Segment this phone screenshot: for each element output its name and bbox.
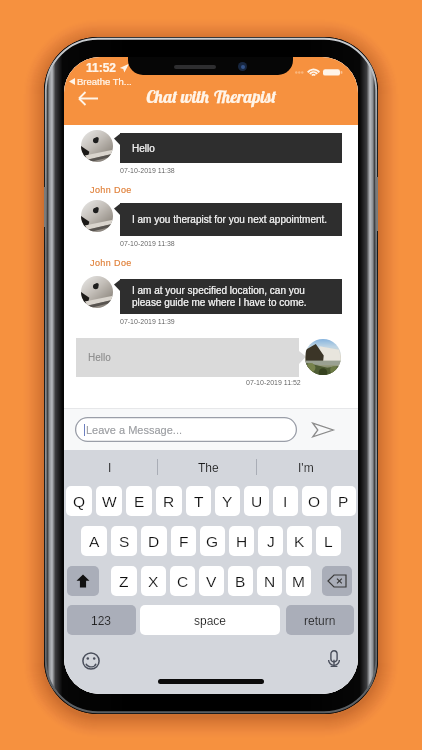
staticText: 07-10-2019 11:38	[120, 167, 175, 175]
staticText: L	[324, 533, 333, 550]
staticText: Y	[222, 493, 233, 510]
staticText: Leave a Message...	[86, 424, 183, 436]
staticText: 11:52	[86, 61, 117, 74]
button[interactable]: Z	[111, 566, 137, 596]
staticText: I	[283, 493, 288, 510]
button[interactable]: J	[258, 526, 283, 556]
button[interactable]: I am you therapist for you next appointm…	[120, 203, 342, 236]
staticText: Chat with Therapist	[64, 86, 358, 107]
staticText: I'm	[298, 461, 314, 474]
staticText: M	[292, 573, 305, 590]
staticText: space	[194, 614, 227, 627]
button[interactable]: Hello	[120, 133, 342, 163]
staticText: H	[236, 533, 248, 550]
button[interactable]: I	[273, 486, 298, 516]
staticText: E	[134, 493, 145, 510]
staticText: S	[119, 533, 130, 550]
button[interactable]: Emoji	[77, 647, 105, 675]
staticText: O	[308, 493, 321, 510]
staticText: Q	[73, 493, 86, 510]
staticText: G	[206, 533, 219, 550]
button[interactable]: W	[96, 486, 122, 516]
staticText: K	[294, 533, 305, 550]
staticText: John Doe	[90, 258, 132, 268]
button[interactable]: T	[186, 486, 211, 516]
button[interactable]: return	[286, 605, 354, 635]
staticText: return	[304, 614, 336, 627]
staticText: John Doe	[90, 185, 132, 195]
staticText: V	[206, 573, 217, 590]
button[interactable]: S	[111, 526, 137, 556]
staticText: J	[267, 533, 275, 550]
staticText: P	[338, 493, 349, 510]
staticText: T	[194, 493, 204, 510]
button[interactable]: Back	[71, 84, 105, 112]
staticText: 07-10-2019 11:52	[246, 379, 301, 387]
staticText: The	[198, 461, 219, 474]
button[interactable]: I am at your specified location, can you…	[120, 279, 342, 314]
button[interactable]: Y	[215, 486, 240, 516]
button[interactable]: P	[331, 486, 356, 516]
staticText: D	[148, 533, 160, 550]
staticText: B	[235, 573, 246, 590]
button[interactable]: Send	[307, 417, 339, 442]
staticText: W	[102, 493, 117, 510]
button[interactable]: C	[170, 566, 195, 596]
staticText: R	[163, 493, 175, 510]
staticText: C	[177, 573, 189, 590]
button[interactable]: Hello	[76, 338, 299, 377]
staticText: N	[264, 573, 276, 590]
staticText: Hello	[88, 352, 111, 363]
button[interactable]: F	[171, 526, 196, 556]
button[interactable]: Shift	[67, 566, 99, 596]
button[interactable]: D	[141, 526, 167, 556]
button[interactable]: E	[126, 486, 152, 516]
staticText: 07-10-2019 11:39	[120, 318, 175, 326]
button[interactable]: space	[140, 605, 280, 635]
staticText: U	[251, 493, 263, 510]
button[interactable]: O	[302, 486, 327, 516]
staticText: 07-10-2019 11:38	[120, 240, 175, 248]
button[interactable]: The	[162, 450, 260, 484]
button[interactable]: H	[229, 526, 254, 556]
staticText: X	[148, 573, 159, 590]
button[interactable]: I'm	[260, 450, 358, 484]
button[interactable]: U	[244, 486, 269, 516]
staticText: Hello	[132, 143, 155, 154]
button[interactable]: X	[141, 566, 166, 596]
staticText: I am at your specified location, can you…	[132, 285, 307, 308]
button[interactable]: A	[81, 526, 107, 556]
button[interactable]: B	[228, 566, 253, 596]
button[interactable]: Q	[66, 486, 92, 516]
button[interactable]: L	[316, 526, 341, 556]
button[interactable]: I	[64, 450, 162, 484]
staticText: Z	[119, 573, 129, 590]
staticText: F	[179, 533, 189, 550]
staticText: I am you therapist for you next appointm…	[132, 214, 328, 225]
button[interactable]: Backspace	[322, 566, 352, 596]
button[interactable]: R	[156, 486, 182, 516]
staticText: A	[89, 533, 100, 550]
staticText: I	[108, 461, 112, 474]
button[interactable]: Leave a Message...	[75, 417, 297, 442]
button[interactable]: N	[257, 566, 282, 596]
staticText: Breathe Th...	[77, 76, 132, 87]
button[interactable]: G	[200, 526, 225, 556]
button[interactable]: M	[286, 566, 311, 596]
staticText: 123	[91, 614, 112, 627]
button[interactable]: V	[199, 566, 224, 596]
button[interactable]: 123	[67, 605, 136, 635]
button[interactable]: K	[287, 526, 312, 556]
button[interactable]: Dictate	[322, 647, 346, 671]
